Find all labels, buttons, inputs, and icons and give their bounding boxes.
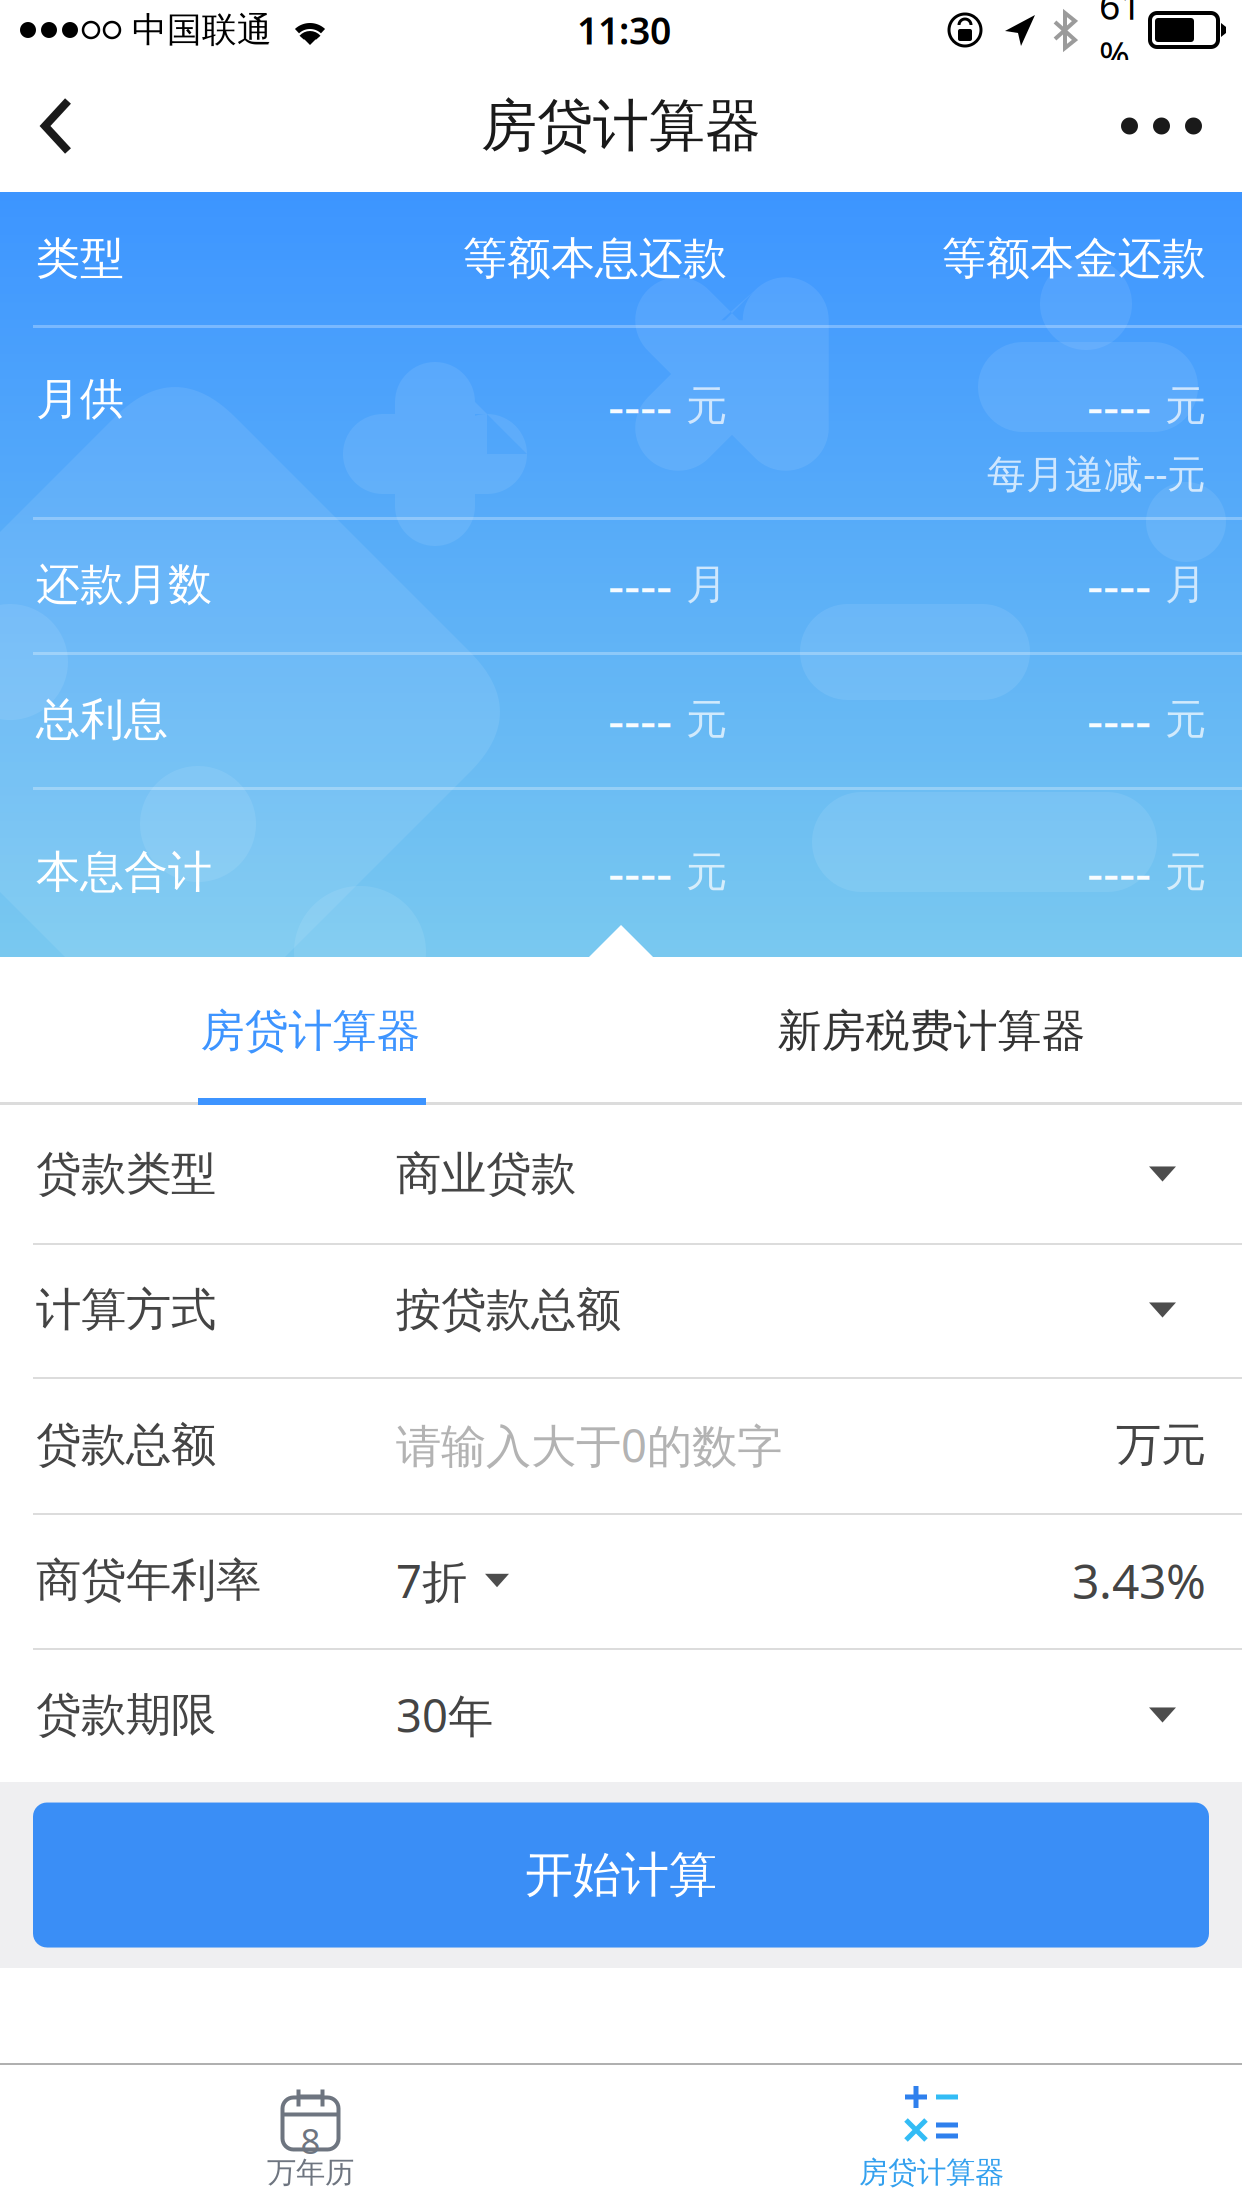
staticText: 万元 <box>1116 1417 1206 1473</box>
staticText: 月 <box>1165 559 1206 610</box>
staticText: 元 <box>1165 694 1206 745</box>
staticText: ---- <box>608 372 672 439</box>
staticText: 等额本金还款 <box>942 231 1206 285</box>
staticText: ---- <box>1087 838 1151 906</box>
staticText: 月 <box>686 559 727 610</box>
staticText: 元 <box>686 380 727 431</box>
staticText: 贷款类型 <box>36 1146 216 1202</box>
staticText: 元 <box>1165 847 1206 897</box>
staticText: 30年 <box>396 1685 493 1745</box>
staticText: 总利息 <box>36 692 168 746</box>
staticText: 月供 <box>36 372 124 426</box>
staticText: ---- <box>1087 551 1151 618</box>
staticText: 类型 <box>36 231 124 285</box>
staticText: 元 <box>686 847 727 897</box>
staticText: 商贷年利率 <box>36 1553 261 1608</box>
button[interactable]: 贷款期限 <box>0 1648 1242 1782</box>
staticText: 中国联通 <box>132 9 272 51</box>
button[interactable]: 计算方式 <box>0 1243 1242 1377</box>
button[interactable]: Back <box>0 60 122 192</box>
button[interactable]: 贷款类型 <box>0 1105 1242 1243</box>
staticText: ---- <box>608 838 672 906</box>
staticText: 计算方式 <box>36 1282 216 1338</box>
staticText: 开始计算 <box>525 1845 717 1904</box>
staticText: 贷款总额 <box>36 1417 216 1473</box>
staticText: 本息合计 <box>36 845 212 899</box>
staticText: ---- <box>608 551 672 618</box>
button[interactable]: 贷款总额 <box>0 1377 1242 1513</box>
staticText: 等额本息还款 <box>463 231 727 285</box>
staticText: 新房税费计算器 <box>777 1004 1085 1058</box>
button[interactable]: 8 <box>0 2065 621 2208</box>
button[interactable]: More <box>1075 60 1242 192</box>
staticText: 请输入大于0的数字 <box>396 1415 782 1475</box>
staticText: 8 <box>300 2117 320 2163</box>
staticText: 房贷计算器 <box>859 2154 1004 2190</box>
staticText: 按贷款总额 <box>396 1282 621 1338</box>
staticText: 贷款期限 <box>36 1687 216 1743</box>
staticText: 7折 <box>396 1550 467 1611</box>
button[interactable]: 开始计算 <box>33 1802 1209 1947</box>
staticText: 元 <box>1165 380 1206 431</box>
staticText: 11:30 <box>577 5 671 55</box>
button[interactable]: 房贷计算器 <box>0 957 621 1105</box>
button[interactable]: 新房税费计算器 <box>621 957 1242 1105</box>
staticText: 还款月数 <box>36 557 212 611</box>
button[interactable]: 房贷计算器 <box>621 2065 1242 2208</box>
staticText: ---- <box>1087 686 1151 753</box>
staticText: 房贷计算器 <box>200 1004 420 1058</box>
staticText: ---- <box>1087 372 1151 439</box>
staticText: 商业贷款 <box>396 1146 576 1202</box>
staticText: 每月递减--元 <box>987 447 1206 499</box>
staticText: ---- <box>608 686 672 753</box>
staticText: 万年历 <box>267 2154 354 2190</box>
staticText: 元 <box>686 694 727 745</box>
staticText: 房贷计算器 <box>481 92 761 160</box>
staticText: 3.43% <box>1072 1549 1206 1612</box>
button[interactable]: 商贷年利率 <box>0 1513 1242 1648</box>
staticText: 61% <box>1099 0 1141 80</box>
